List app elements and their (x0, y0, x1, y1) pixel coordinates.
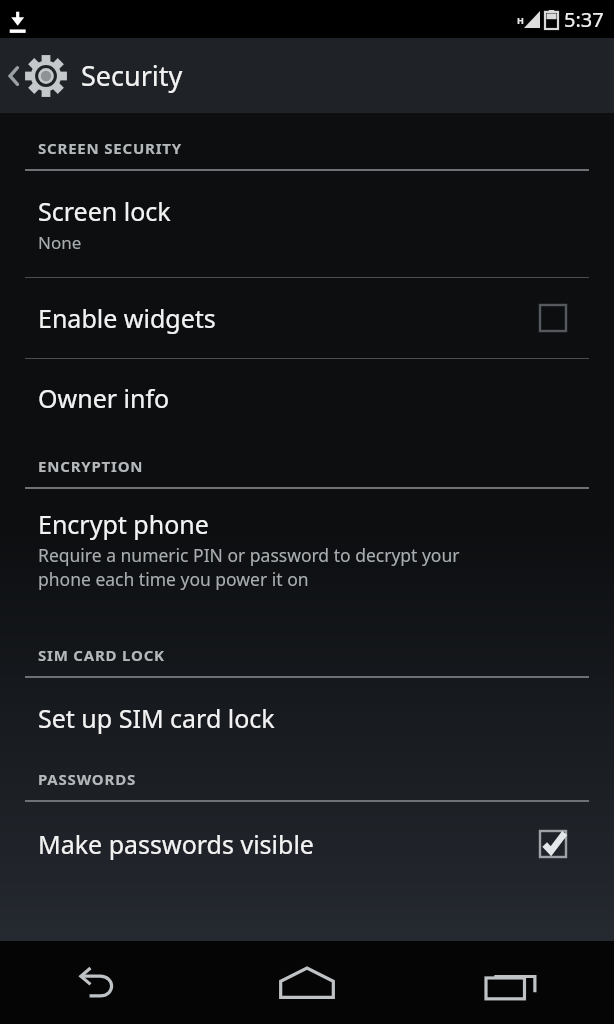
staticText: Encrypt phone (38, 507, 209, 541)
staticText: SCREEN SECURITY (38, 138, 182, 158)
staticText: SIM CARD LOCK (38, 645, 165, 665)
button[interactable]: Owner info (0, 359, 614, 437)
button[interactable]: Screen lock (0, 171, 614, 277)
button[interactable]: Home (204, 941, 409, 1024)
button[interactable]: Navigate up (0, 38, 614, 113)
staticText: H (517, 14, 524, 26)
staticText: Owner info (38, 381, 170, 415)
button[interactable]: Make passwords visible (0, 802, 614, 886)
staticText: Require a numeric PIN or password to dec… (38, 543, 460, 591)
staticText: Security (81, 57, 183, 94)
staticText: Screen lock (38, 194, 171, 228)
staticText: Enable widgets (38, 301, 540, 335)
button[interactable]: Encrypt phone (0, 489, 614, 634)
button[interactable]: Set up SIM card lock (0, 678, 614, 758)
button[interactable]: Back (0, 941, 204, 1024)
staticText: None (38, 231, 82, 254)
staticText: Make passwords visible (38, 827, 540, 861)
staticText: 5:37 (564, 6, 604, 33)
staticText: Set up SIM card lock (38, 701, 275, 735)
staticText: PASSWORDS (38, 769, 136, 789)
button[interactable]: Enable widgets (0, 278, 614, 358)
staticText: ENCRYPTION (38, 456, 144, 476)
button[interactable]: Recent apps (409, 941, 614, 1024)
